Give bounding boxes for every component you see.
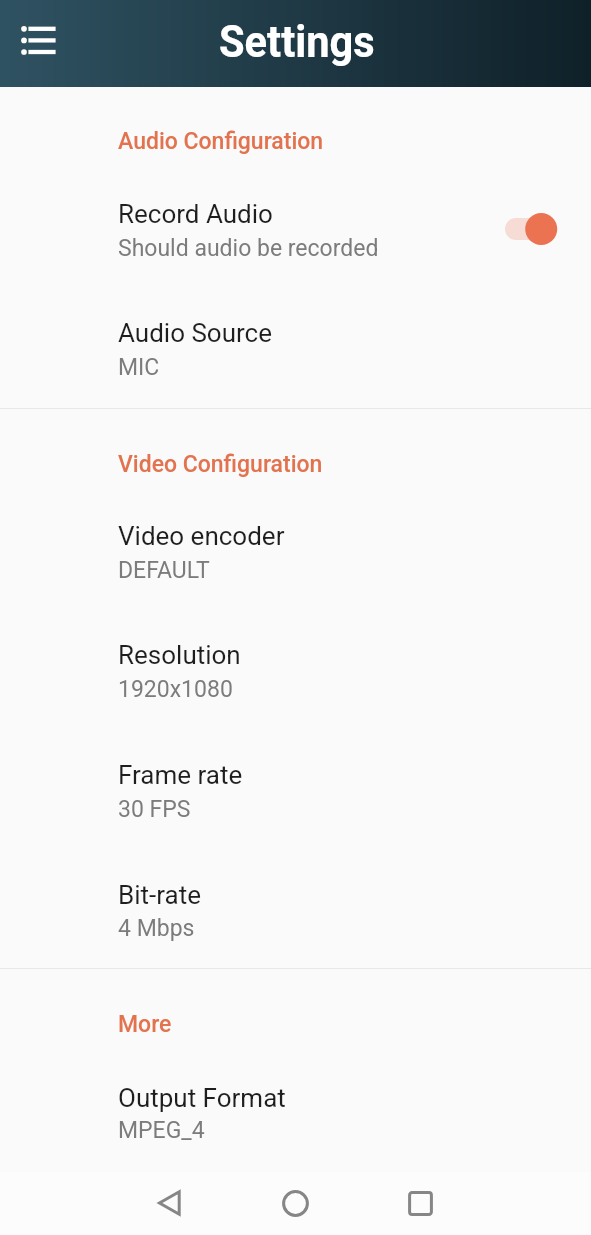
staticText: Resolution (118, 640, 241, 670)
staticText: Audio Configuration (118, 128, 324, 155)
button[interactable] (0, 302, 591, 402)
button[interactable]: Home (267, 1175, 323, 1231)
button[interactable] (0, 624, 591, 724)
button[interactable] (0, 504, 591, 604)
button[interactable]: Recents (392, 1175, 448, 1231)
staticText: Should audio be recorded (118, 235, 379, 262)
staticText: 30 FPS (118, 796, 191, 823)
staticText: Record Audio (118, 199, 273, 229)
button[interactable] (0, 863, 591, 963)
staticText: MIC (118, 354, 160, 381)
button[interactable]: Back (140, 1175, 196, 1231)
button[interactable] (0, 744, 591, 844)
button[interactable]: Record audio toggle (504, 211, 570, 247)
staticText: Video Configuration (118, 451, 323, 478)
staticText: MPEG_4 (118, 1117, 205, 1144)
button[interactable]: Menu (0, 8, 59, 74)
staticText: More (118, 1011, 172, 1038)
staticText: 1920x1080 (118, 676, 233, 703)
staticText: Video encoder (118, 521, 285, 551)
button[interactable] (0, 1066, 591, 1166)
button[interactable] (0, 182, 591, 290)
staticText: Frame rate (118, 760, 243, 790)
staticText: 4 Mbps (118, 915, 195, 942)
staticText: Settings (219, 16, 375, 68)
staticText: Audio Source (118, 318, 272, 348)
staticText: Bit-rate (118, 880, 201, 910)
staticText: DEFAULT (118, 557, 210, 584)
staticText: Output Format (118, 1083, 286, 1113)
